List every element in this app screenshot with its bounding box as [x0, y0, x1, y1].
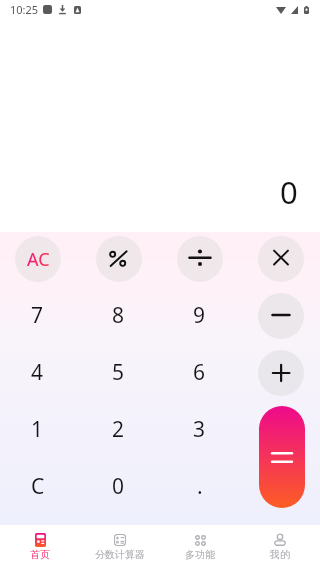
- staticText: 0: [112, 472, 125, 501]
- staticText: 8: [112, 301, 125, 330]
- staticText: 我的: [270, 548, 290, 561]
- button[interactable]: C: [0, 458, 78, 515]
- staticText: 7: [31, 301, 44, 330]
- button[interactable]: 分数计算器: [80, 525, 160, 568]
- button[interactable]: Plus: [258, 350, 304, 396]
- staticText: 9: [193, 301, 206, 330]
- staticText: 多功能: [185, 548, 215, 561]
- staticText: 5: [112, 358, 125, 387]
- staticText: 1: [31, 415, 44, 444]
- button[interactable]: Equals: [259, 406, 305, 508]
- staticText: 首页: [30, 548, 50, 561]
- button[interactable]: Minus: [258, 293, 304, 339]
- button[interactable]: 2: [78, 401, 159, 458]
- button[interactable]: 5: [78, 344, 159, 401]
- staticText: 0: [280, 171, 298, 213]
- staticText: AC: [27, 247, 50, 272]
- staticText: .: [197, 472, 203, 501]
- button[interactable]: 0: [78, 458, 159, 515]
- staticText: C: [31, 472, 45, 501]
- button[interactable]: 多功能: [160, 525, 240, 568]
- staticText: 分数计算器: [95, 548, 145, 561]
- button[interactable]: 4: [0, 344, 78, 401]
- button[interactable]: 7: [0, 287, 78, 344]
- button[interactable]: Divide: [177, 236, 223, 282]
- staticText: 6: [193, 358, 206, 387]
- button[interactable]: 9: [159, 287, 240, 344]
- button[interactable]: 6: [159, 344, 240, 401]
- button[interactable]: 8: [78, 287, 159, 344]
- button[interactable]: 3: [159, 401, 240, 458]
- staticText: 10:25: [10, 2, 39, 17]
- staticText: 4: [31, 358, 44, 387]
- button[interactable]: 我的: [240, 525, 320, 568]
- button[interactable]: Percent: [96, 236, 142, 282]
- button[interactable]: Multiply: [258, 236, 304, 282]
- button[interactable]: AC: [15, 236, 61, 282]
- button[interactable]: .: [159, 458, 240, 515]
- staticText: 2: [112, 415, 125, 444]
- staticText: 3: [193, 415, 206, 444]
- button[interactable]: 1: [0, 401, 78, 458]
- button[interactable]: 首页: [0, 525, 80, 568]
